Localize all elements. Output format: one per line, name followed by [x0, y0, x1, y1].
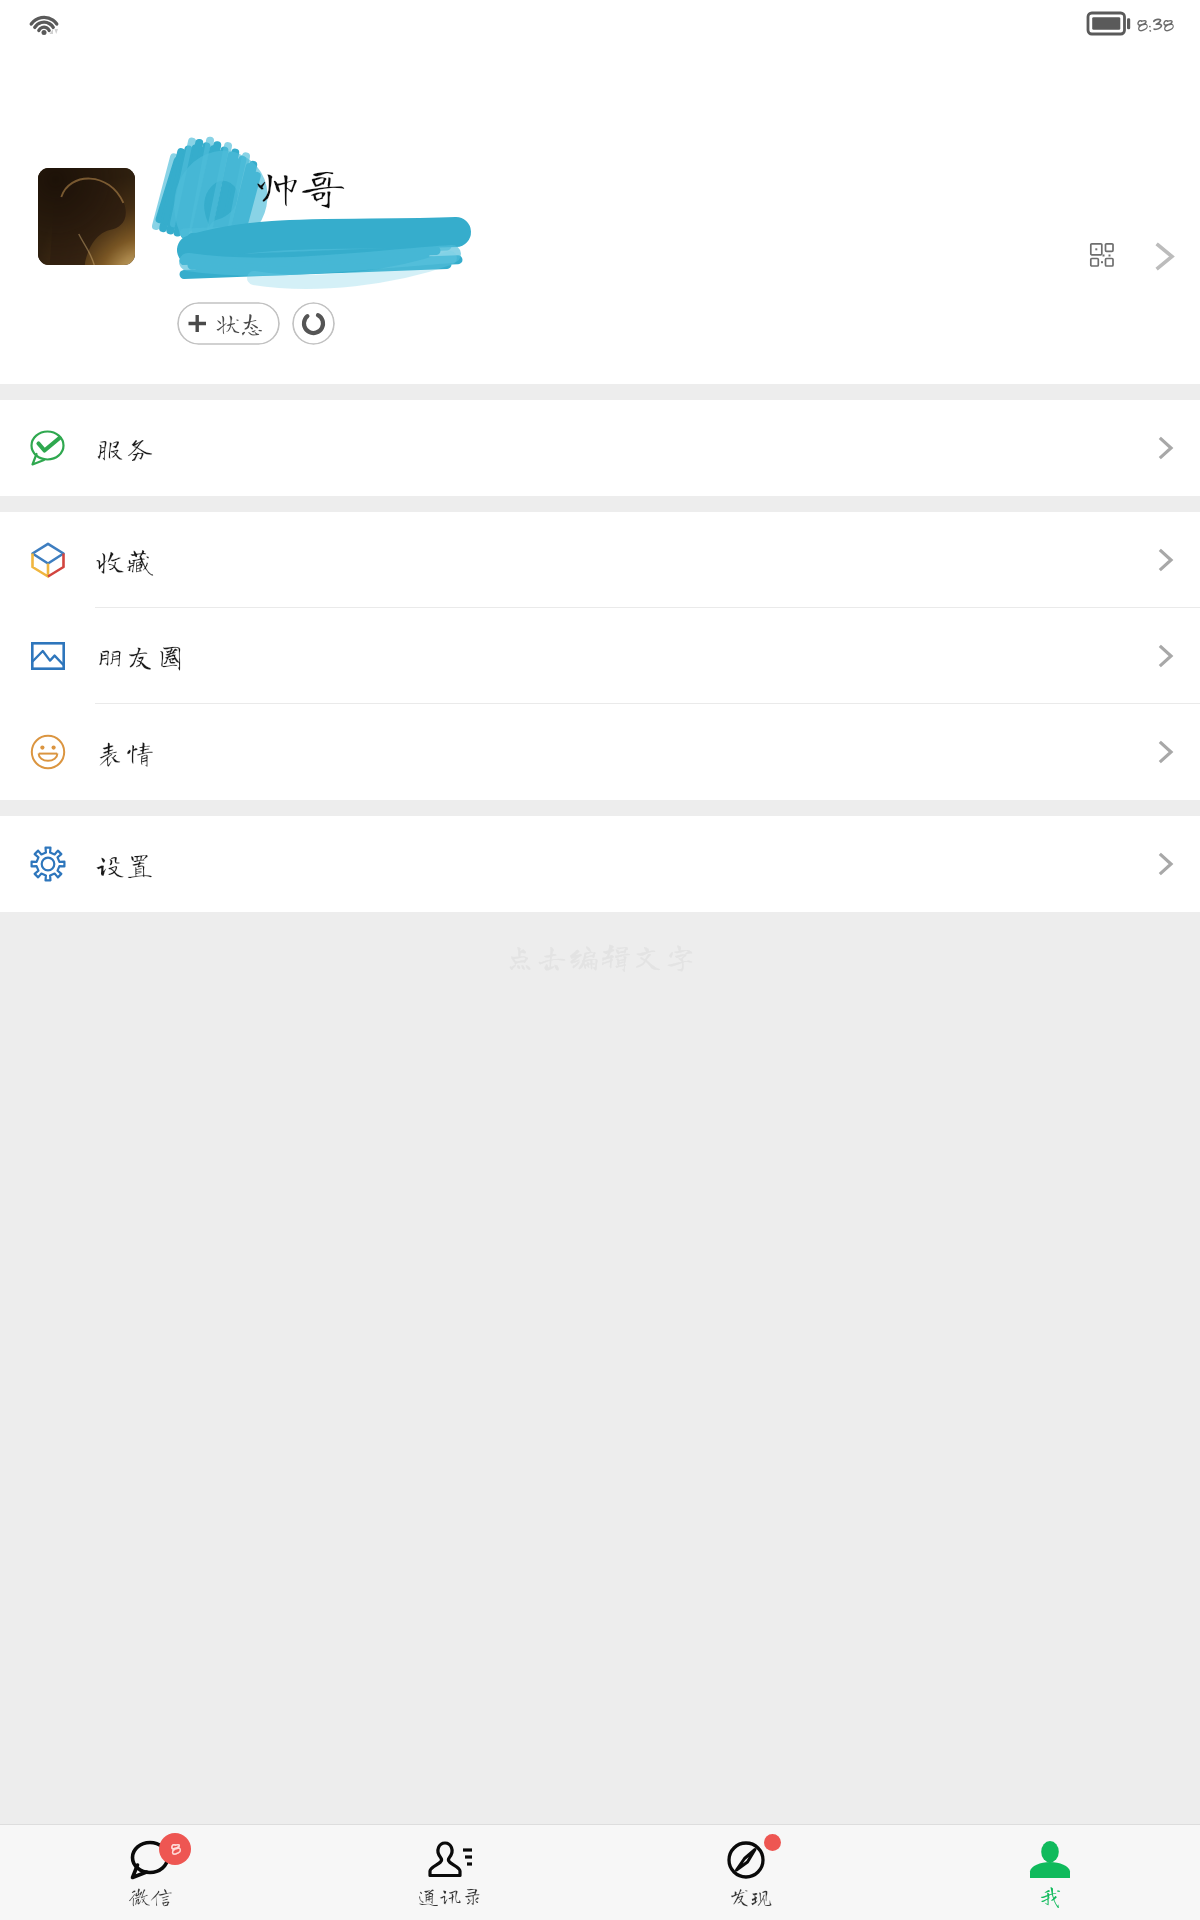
- button[interactable]: 服务: [0, 400, 1200, 496]
- button[interactable]: 通讯录: [300, 1825, 600, 1920]
- button[interactable]: 帅哥: [0, 62, 1200, 384]
- staticText: 点击编辑文字: [504, 940, 697, 972]
- staticText: 设置: [96, 850, 157, 878]
- staticText: 微信: [128, 1885, 173, 1907]
- button[interactable]: 表情: [0, 704, 1200, 800]
- button[interactable]: 收藏: [0, 512, 1200, 608]
- staticText: 8: [170, 1836, 181, 1860]
- staticText: 表情: [96, 738, 157, 766]
- button[interactable]: 8: [0, 1825, 300, 1920]
- button[interactable]: 发现: [600, 1825, 900, 1920]
- staticText: 8:38: [1136, 11, 1173, 37]
- button[interactable]: My QR code: [1090, 243, 1117, 270]
- staticText: 发现: [728, 1885, 773, 1907]
- button[interactable]: Refresh status: [292, 302, 335, 345]
- button[interactable]: 状态: [177, 302, 280, 345]
- staticText: 我: [1039, 1885, 1062, 1907]
- staticText: 状态: [216, 311, 264, 335]
- staticText: 朋友圈: [96, 642, 187, 670]
- staticText: 服务: [96, 434, 157, 462]
- button[interactable]: Profile details: [1150, 243, 1180, 270]
- staticText: 收藏: [96, 546, 157, 574]
- staticText: 帅哥: [254, 164, 346, 210]
- button[interactable]: 设置: [0, 816, 1200, 912]
- button[interactable]: 我: [900, 1825, 1200, 1920]
- staticText: 通讯录: [417, 1885, 484, 1907]
- button[interactable]: 朋友圈: [0, 608, 1200, 704]
